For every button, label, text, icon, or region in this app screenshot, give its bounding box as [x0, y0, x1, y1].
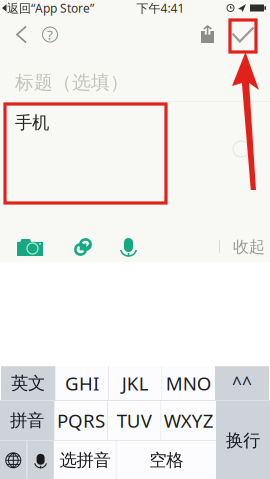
button[interactable]: 空格 — [117, 441, 216, 479]
button[interactable]: Back — [7, 17, 36, 52]
staticText: 英文 — [11, 373, 45, 394]
staticText: WXYZ — [164, 408, 214, 433]
staticText: ^^ — [232, 372, 252, 395]
button[interactable]: 英文 — [1, 366, 55, 400]
button[interactable]: Dictate — [27, 441, 54, 479]
button[interactable]: Camera — [2, 232, 54, 262]
staticText: JKL — [122, 371, 149, 396]
staticText: 空格 — [149, 450, 183, 471]
staticText: 返回“App Store” — [7, 0, 94, 16]
button[interactable]: ^^ — [215, 366, 269, 400]
button[interactable]: Link — [55, 232, 111, 262]
button[interactable]: TUV — [108, 401, 161, 440]
staticText: ? — [47, 26, 53, 43]
staticText: 手机 — [15, 112, 49, 133]
staticText: 拼音 — [10, 410, 44, 431]
button[interactable]: Switch keyboard — [0, 441, 27, 479]
button[interactable]: WXYZ — [161, 401, 216, 440]
button[interactable]: JKL — [109, 366, 162, 400]
staticText: 换行 — [226, 430, 260, 451]
staticText: 标题（选填） — [15, 71, 129, 94]
staticText: TUV — [117, 408, 152, 433]
button[interactable]: Share — [193, 17, 222, 52]
staticText: GHI — [65, 371, 99, 396]
button[interactable]: Help — [36, 17, 64, 52]
button[interactable]: MNO — [162, 366, 215, 400]
staticText: MNO — [166, 371, 212, 396]
button[interactable]: PQRS — [55, 401, 107, 440]
button[interactable]: Voice — [104, 232, 154, 262]
button[interactable]: 拼音 — [0, 401, 54, 440]
button[interactable]: GHI — [56, 366, 108, 400]
staticText: PQRS — [57, 408, 105, 433]
staticText: 选拼音 — [59, 450, 110, 471]
staticText: 收起 — [233, 237, 265, 257]
button[interactable]: 收起 — [220, 232, 270, 262]
button[interactable]: Done — [226, 17, 260, 52]
button[interactable]: 换行 — [216, 401, 270, 479]
staticText: 下午4:41 — [136, 0, 184, 16]
button[interactable]: 选拼音 — [54, 441, 116, 479]
